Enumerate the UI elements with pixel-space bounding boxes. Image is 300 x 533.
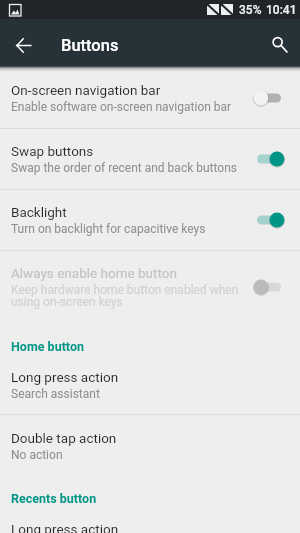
staticText: Long press action	[11, 369, 119, 385]
button[interactable]: Backlight	[0, 190, 300, 250]
staticText: On-screen navigation bar	[11, 82, 161, 98]
staticText: Home button	[11, 339, 84, 354]
staticText: Backlight	[11, 204, 67, 220]
button[interactable]: Always enable home button	[0, 251, 300, 323]
staticText: Search assistant	[11, 387, 100, 401]
staticText: Long press action	[11, 521, 119, 533]
button[interactable]: Swap buttons	[0, 129, 300, 189]
staticText: 35%	[239, 3, 262, 17]
staticText: Swap the order of recent and back button…	[11, 161, 237, 175]
staticText: No action	[11, 448, 63, 462]
staticText: Buttons	[61, 36, 119, 55]
staticText: Always enable home button	[11, 265, 177, 281]
button[interactable]: Search	[262, 27, 296, 61]
button[interactable]: Long press action	[0, 354, 300, 414]
staticText: Enable software on-screen navigation bar	[11, 100, 232, 114]
button[interactable]: Navigate up	[6, 28, 40, 62]
staticText: Double tap action	[11, 430, 117, 446]
staticText: Recents button	[11, 491, 97, 506]
staticText: 10:41	[266, 3, 297, 17]
staticText: Keep hardware home button enabled when u…	[11, 283, 249, 309]
button[interactable]: Double tap action	[0, 415, 300, 475]
button[interactable]: Long press action	[0, 506, 300, 533]
staticText: Swap buttons	[11, 143, 94, 159]
button[interactable]: On-screen navigation bar	[0, 68, 300, 128]
staticText: Turn on backlight for capacitive keys	[11, 222, 206, 236]
